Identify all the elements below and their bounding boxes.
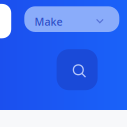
- staticText: Make: [34, 14, 62, 29]
- button[interactable]: Search: [57, 49, 98, 90]
- button[interactable]: Make: [24, 6, 119, 32]
